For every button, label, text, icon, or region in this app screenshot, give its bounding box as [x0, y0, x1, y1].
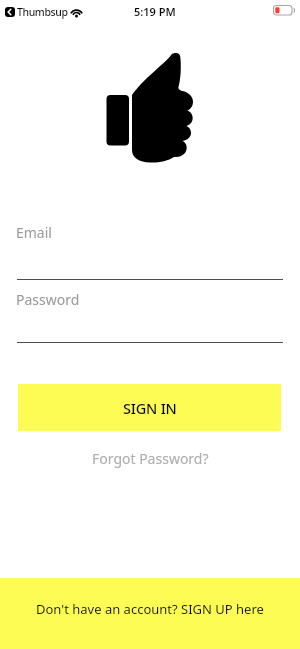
- button[interactable]: Don't have an account? SIGN UP here: [0, 578, 300, 649]
- staticText: Forgot Password?: [92, 449, 209, 468]
- staticText: SIGN IN: [123, 398, 177, 418]
- staticText: 5:19 PM: [134, 4, 176, 19]
- button[interactable]: Forgot Password?: [92, 449, 209, 468]
- staticText: Don't have an account? SIGN UP here: [36, 600, 264, 618]
- staticText: Password: [16, 290, 80, 309]
- staticText: Thumbsup: [17, 5, 68, 19]
- button[interactable]: SIGN IN: [18, 384, 281, 431]
- staticText: Email: [16, 223, 52, 242]
